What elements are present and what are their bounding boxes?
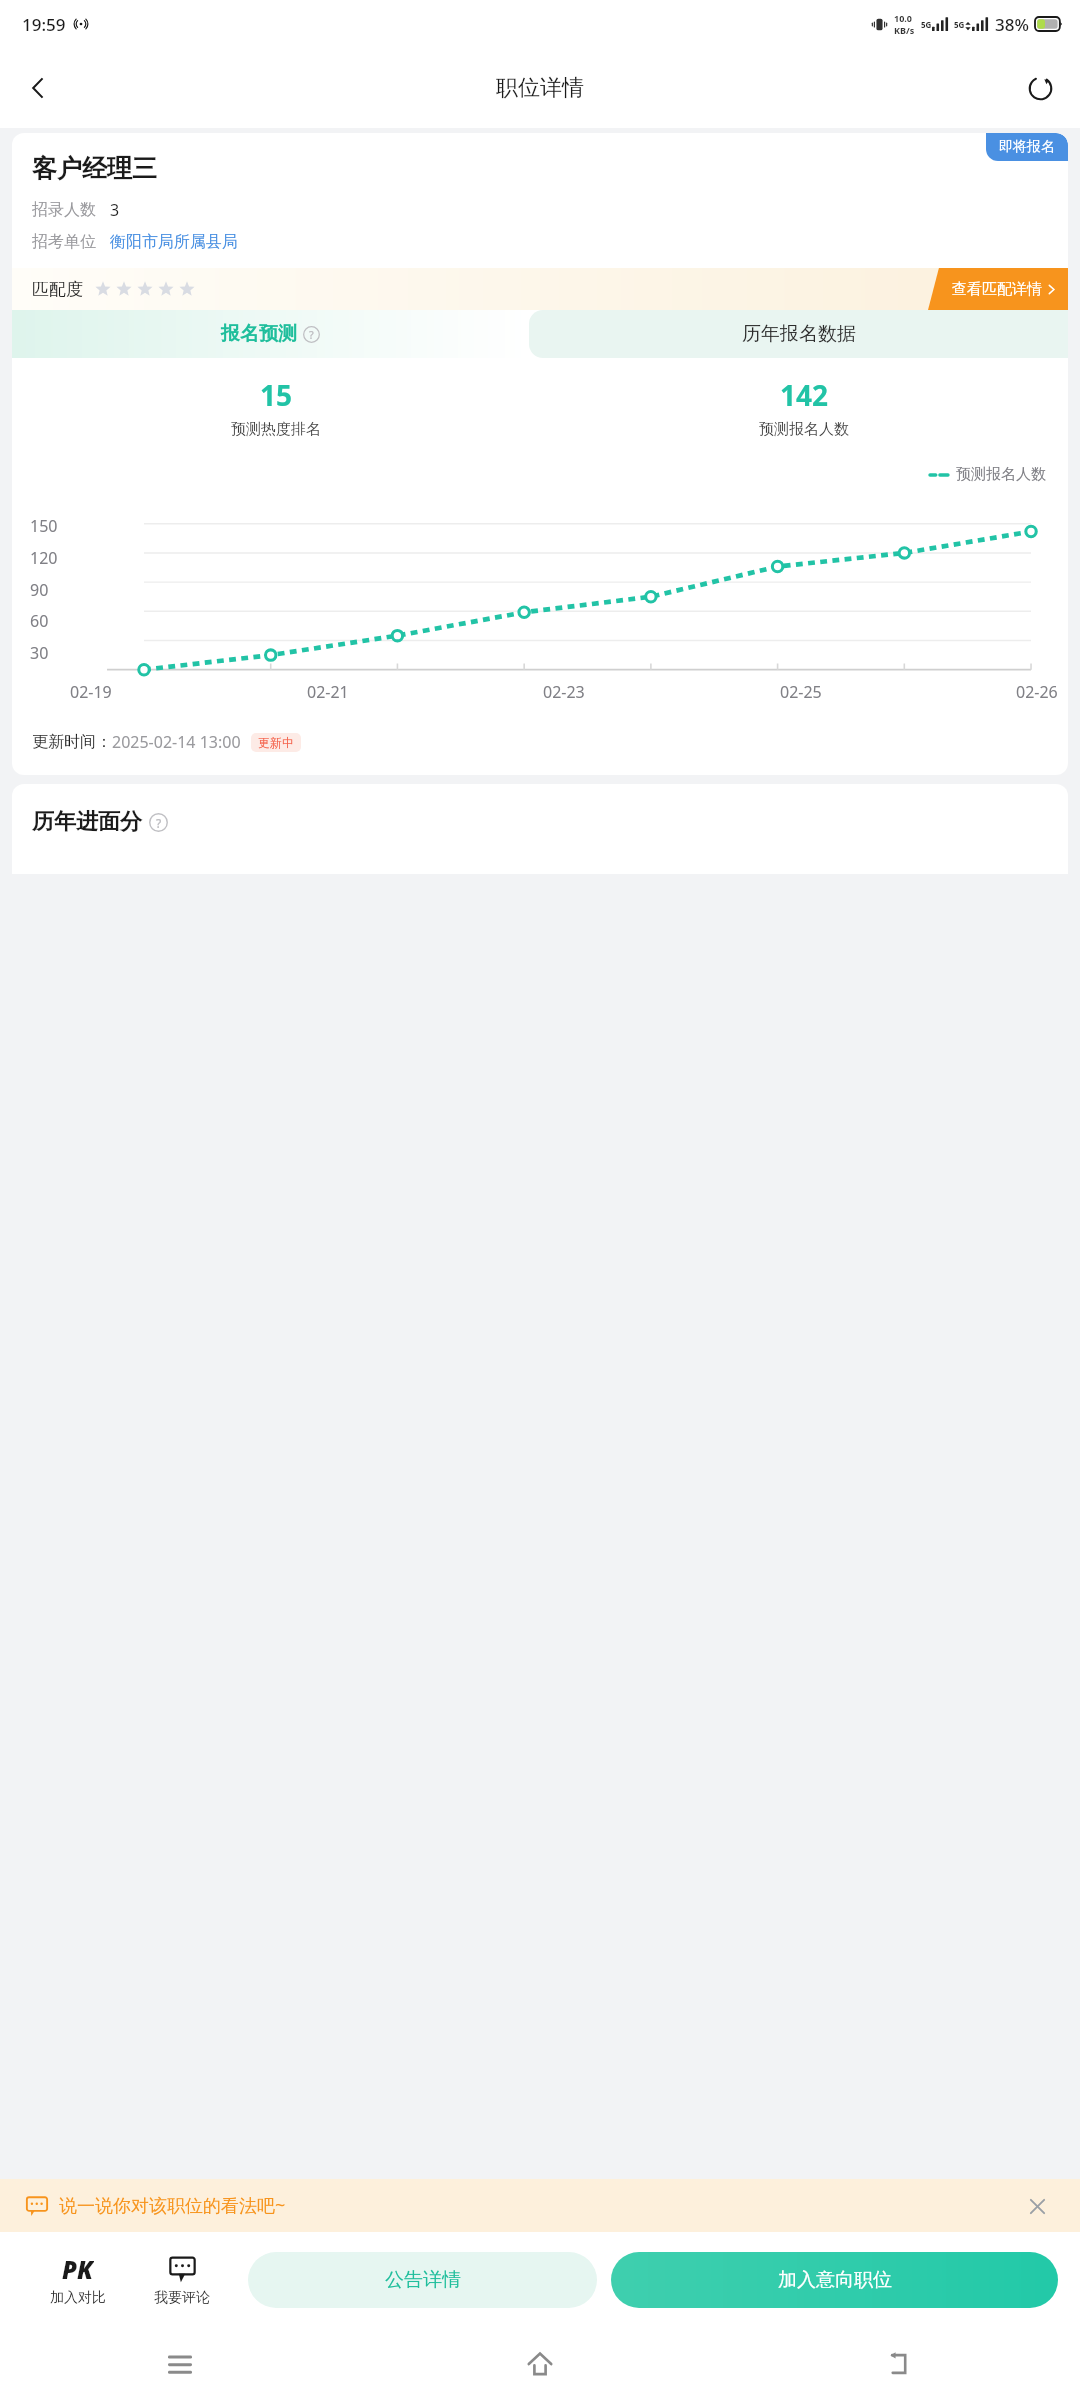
button[interactable]: 加入意向职位 <box>611 2252 1058 2308</box>
button[interactable]: Recents <box>0 2328 360 2400</box>
staticText: 预测报名人数 <box>759 420 849 439</box>
staticText: 02-25 <box>780 681 822 703</box>
button[interactable]: PK <box>26 2232 130 2328</box>
staticText: 匹配度 <box>32 279 83 300</box>
staticText: 报名预测 <box>221 322 297 346</box>
staticText: 02-23 <box>543 681 585 703</box>
staticText: 5G <box>921 19 932 30</box>
staticText: 衡阳市局所属县局 <box>110 232 238 252</box>
staticText: 即将报名 <box>999 138 1055 156</box>
staticText: 38% <box>995 13 1029 36</box>
staticText: 3 <box>110 199 120 221</box>
staticText: 02-26 <box>1016 681 1058 703</box>
staticText: 预测热度排名 <box>231 420 321 439</box>
button[interactable]: 即将报名 <box>986 133 1068 161</box>
staticText: 预测报名人数 <box>956 465 1046 484</box>
button[interactable]: Home <box>360 2328 720 2400</box>
button[interactable]: Back <box>10 60 66 116</box>
staticText: 60 <box>30 610 70 632</box>
staticText: 02-21 <box>307 681 349 703</box>
staticText: 30 <box>30 642 70 664</box>
staticText: 5G <box>954 19 965 30</box>
button[interactable]: 我要评论 <box>130 2232 234 2328</box>
button[interactable]: 历年报名数据 <box>529 310 1068 358</box>
staticText: ? <box>309 328 314 342</box>
staticText: 150 <box>30 515 70 537</box>
staticText: 142 <box>780 376 829 414</box>
button[interactable]: Close <box>1020 2189 1054 2223</box>
staticText: 2025-02-14 13:00 <box>112 731 241 753</box>
staticText: PK <box>62 2253 94 2285</box>
staticText: 加入对比 <box>50 2289 106 2307</box>
button[interactable]: 招考单位 <box>32 232 238 252</box>
staticText: 120 <box>30 547 70 569</box>
staticText: KB/s <box>894 24 915 36</box>
staticText: 19:59 <box>22 13 66 36</box>
staticText: 加入意向职位 <box>778 2268 892 2292</box>
staticText: 更新中 <box>258 735 294 750</box>
staticText: 10.0 <box>894 12 912 24</box>
staticText: 历年进面分 <box>32 808 142 836</box>
staticText: 公告详情 <box>385 2268 461 2292</box>
button[interactable]: 查看匹配详情 <box>928 268 1068 310</box>
staticText: 职位详情 <box>496 74 584 102</box>
staticText: 历年报名数据 <box>742 322 856 346</box>
button[interactable]: 说一说你对该职位的看法吧~ <box>0 2179 1080 2232</box>
staticText: 我要评论 <box>154 2289 210 2307</box>
staticText: 招考单位 <box>32 232 96 252</box>
button[interactable]: Refresh <box>1012 60 1068 116</box>
staticText: 查看匹配详情 <box>952 280 1042 299</box>
staticText: 15 <box>260 376 293 414</box>
button[interactable]: Back <box>720 2328 1080 2400</box>
staticText: 90 <box>30 579 70 601</box>
staticText: 说一说你对该职位的看法吧~ <box>59 2193 286 2218</box>
button[interactable]: 报名预测 <box>12 310 529 358</box>
staticText: 02-19 <box>70 681 112 703</box>
staticText: 招录人数 <box>32 200 96 220</box>
staticText: 客户经理三 <box>32 153 157 184</box>
button[interactable]: 公告详情 <box>248 2252 597 2308</box>
staticText: ? <box>156 815 162 831</box>
staticText: 更新时间： <box>32 732 112 752</box>
